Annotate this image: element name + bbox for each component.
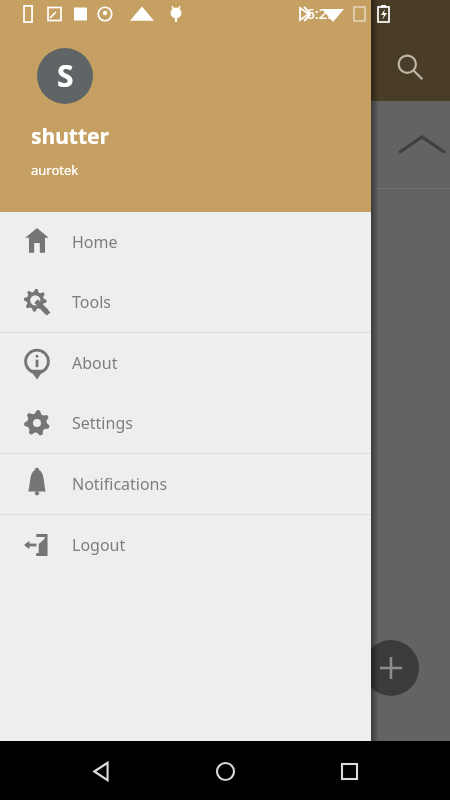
- staticText: Tools: [72, 291, 111, 313]
- button[interactable]: Back: [78, 748, 124, 794]
- button[interactable]: Notifications: [0, 454, 371, 514]
- staticText: 6:25: [306, 3, 336, 23]
- button[interactable]: Recents: [326, 748, 372, 794]
- staticText: Home: [72, 231, 118, 253]
- button[interactable]: Logout: [0, 515, 371, 575]
- button[interactable]: Add: [363, 640, 419, 696]
- staticText: aurotek: [31, 161, 79, 179]
- button[interactable]: About: [0, 333, 371, 393]
- button[interactable]: Home: [202, 748, 248, 794]
- staticText: About: [72, 352, 118, 374]
- button[interactable]: Home: [0, 212, 371, 272]
- button[interactable]: Search: [390, 48, 426, 84]
- staticText: Settings: [72, 412, 133, 434]
- staticText: S: [57, 55, 74, 96]
- staticText: Logout: [72, 534, 126, 556]
- staticText: Notifications: [72, 473, 168, 495]
- button[interactable]: Settings: [0, 393, 371, 453]
- button[interactable]: Tools: [0, 272, 371, 332]
- staticText: shutter: [31, 122, 109, 151]
